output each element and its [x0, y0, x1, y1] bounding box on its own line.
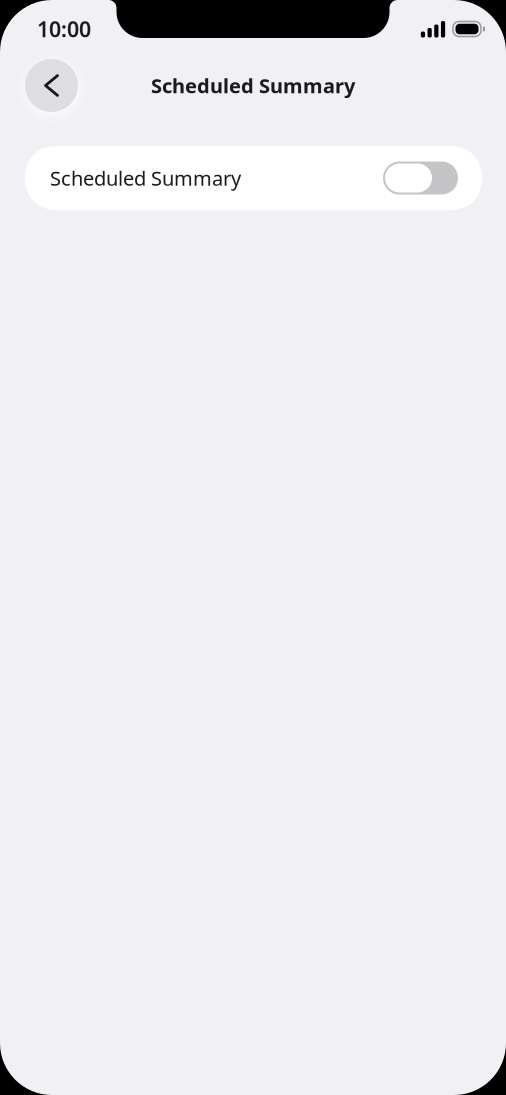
staticText: Scheduled Summary	[151, 72, 355, 99]
staticText: Scheduled Summary	[50, 165, 241, 191]
staticText: 10:00	[37, 15, 91, 43]
button[interactable]: Scheduled Summary	[25, 146, 482, 210]
button[interactable]: Back	[25, 59, 78, 112]
